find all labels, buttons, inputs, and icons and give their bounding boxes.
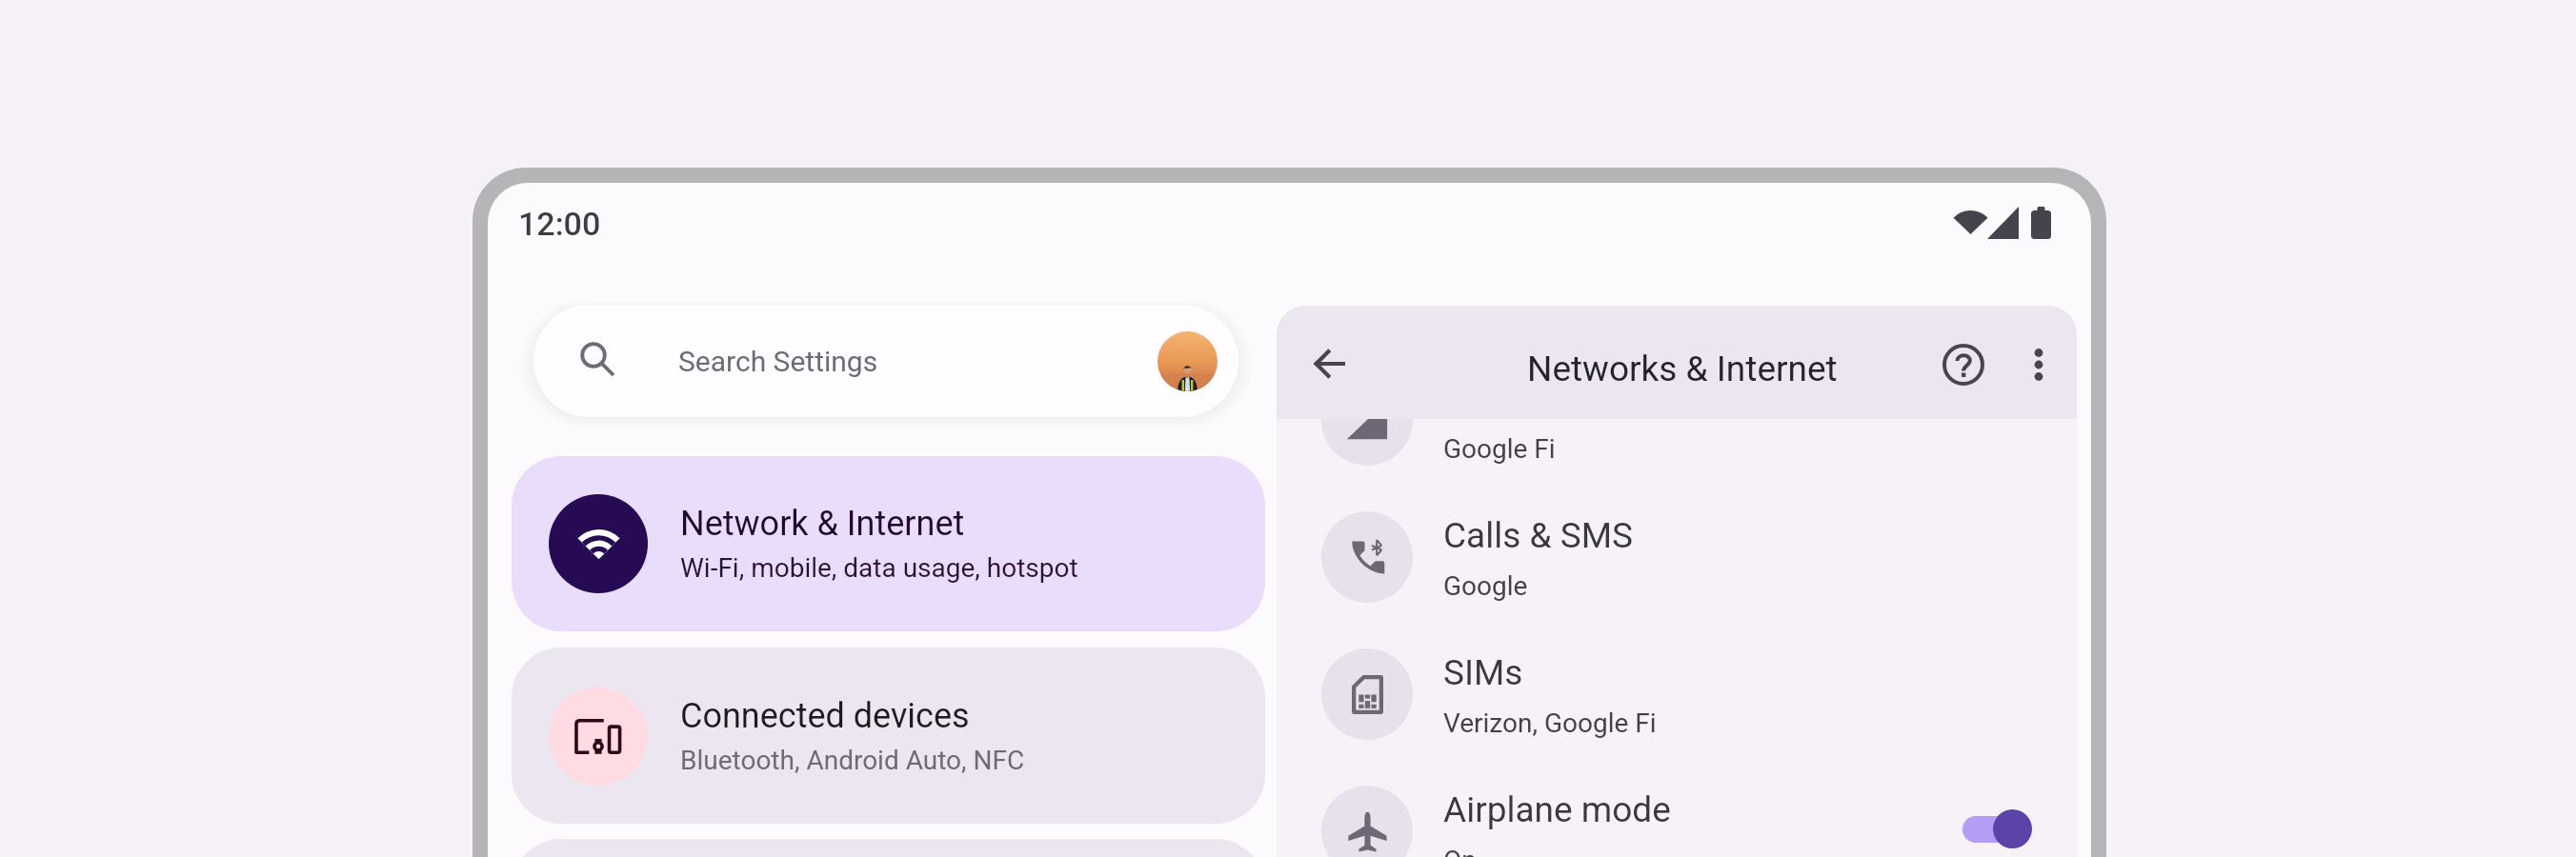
staticText: Bluetooth, Android Auto, NFC [680, 745, 1025, 776]
staticText: Airplane mode [1443, 789, 1671, 830]
staticText: On [1443, 845, 1477, 857]
staticText: Mobile network [1443, 378, 1685, 419]
staticText: Google Fi [1443, 433, 1556, 465]
staticText: Networks & Internet [1527, 349, 1838, 389]
button[interactable]: Airplane mode [1277, 760, 2077, 857]
staticText: Verizon, Google Fi [1443, 708, 1657, 739]
staticText: 12:00 [518, 205, 601, 243]
staticText: Calls & SMS [1443, 515, 1633, 556]
button[interactable]: Mobile network [1277, 349, 2077, 491]
staticText: Connected devices [680, 696, 970, 736]
staticText: Google [1443, 570, 1528, 602]
button[interactable]: Network & Internet [512, 456, 1265, 631]
button[interactable]: More options [2010, 336, 2067, 393]
button[interactable]: Back [1301, 335, 1358, 392]
staticText: Search Settings [678, 345, 878, 378]
button[interactable]: SIMs [1277, 623, 2077, 766]
staticText: SIMs [1443, 652, 1523, 693]
button[interactable]: Help [1935, 336, 1992, 393]
staticText: Wi-Fi, mobile, data usage, hotspot [680, 552, 1078, 584]
staticText: Network & Internet [680, 504, 965, 544]
button[interactable]: Calls & SMS [1277, 486, 2077, 628]
button[interactable]: Connected devices [512, 648, 1265, 824]
button[interactable]: Search Settings [533, 305, 1238, 417]
button[interactable]: Account [1157, 331, 1218, 391]
button[interactable]: Apps [512, 839, 1265, 857]
